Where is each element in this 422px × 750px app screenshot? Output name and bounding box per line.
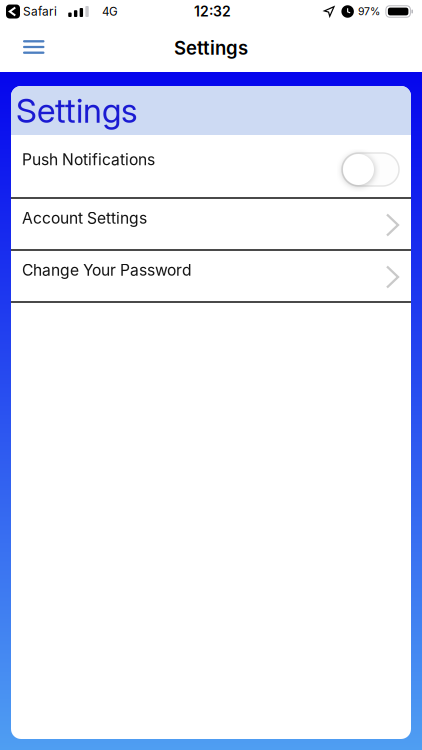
staticText: Change Your Password [22, 261, 192, 279]
button[interactable]: Menu [0, 34, 52, 64]
button[interactable]: Account Settings [11, 199, 411, 249]
staticText: Push Notifications [22, 150, 155, 169]
staticText: Settings [16, 90, 138, 131]
staticText: Safari [23, 4, 57, 19]
staticText: Settings [174, 37, 248, 59]
button[interactable]: Change Your Password [11, 251, 411, 301]
staticText: 4G [102, 4, 118, 18]
staticText: Account Settings [22, 209, 147, 227]
button[interactable]: Back to Safari [6, 4, 57, 19]
staticText: 97% [358, 5, 380, 18]
staticText: 12:32 [194, 3, 231, 20]
button[interactable]: Push Notifications [342, 153, 399, 186]
